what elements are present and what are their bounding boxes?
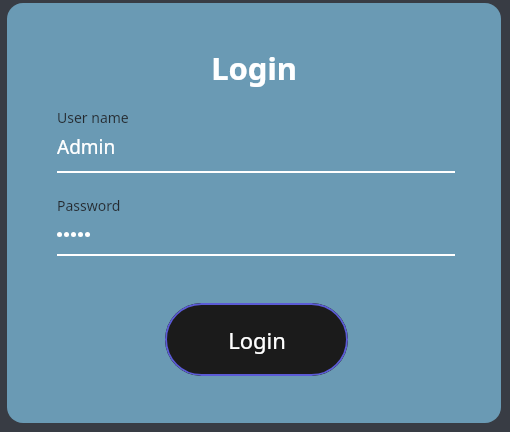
staticText: Password bbox=[57, 196, 121, 215]
button[interactable]: User name bbox=[57, 108, 455, 173]
button[interactable]: Login bbox=[165, 303, 348, 376]
staticText: Admin bbox=[57, 134, 116, 160]
staticText: Login bbox=[228, 325, 286, 355]
staticText: User name bbox=[57, 108, 129, 127]
staticText: Login bbox=[211, 47, 297, 89]
button[interactable]: Password bbox=[57, 196, 455, 256]
